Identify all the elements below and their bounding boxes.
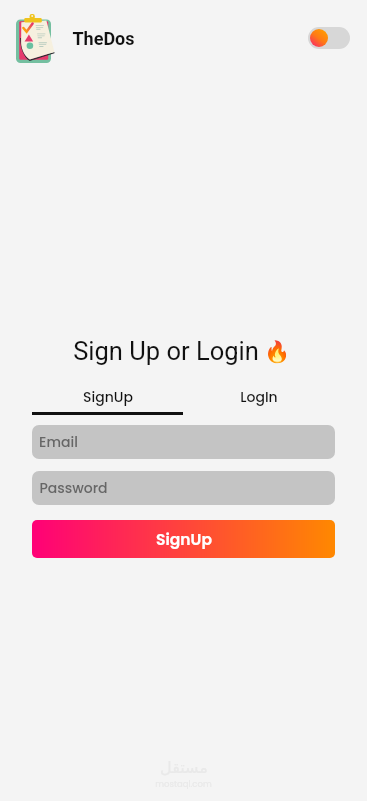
staticText: mostaql.com (155, 778, 212, 790)
button[interactable]: Password (32, 471, 335, 505)
button[interactable]: LogIn (183, 387, 335, 412)
staticText: LogIn (240, 387, 278, 407)
button[interactable]: Email (32, 425, 335, 459)
button[interactable]: SignUp (32, 387, 183, 415)
staticText: 🔥 (264, 340, 291, 365)
button[interactable]: TheDos home (0, 0, 135, 76)
staticText: Password (39, 478, 108, 498)
staticText: SignUp (156, 529, 212, 551)
staticText: مستقل (160, 758, 208, 777)
button[interactable]: SignUp (32, 520, 335, 558)
staticText: Email (39, 432, 78, 452)
staticText: SignUp (83, 387, 133, 407)
staticText: Sign Up or Login (73, 336, 259, 366)
button[interactable]: Toggle theme (308, 27, 350, 49)
staticText: TheDos (72, 28, 135, 49)
